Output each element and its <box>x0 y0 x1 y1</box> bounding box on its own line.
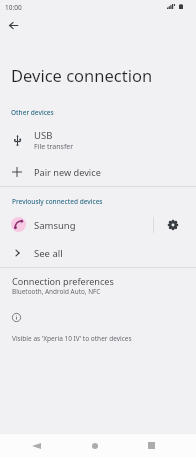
button[interactable]: Pair new device <box>0 162 196 182</box>
staticText: Bluetooth, Android Auto, NFC <box>12 287 101 296</box>
staticText: Device connection <box>11 64 153 86</box>
button[interactable]: Samsung <box>0 214 153 236</box>
staticText: Samsung <box>34 219 76 232</box>
button[interactable]: Connection preferences <box>0 272 196 300</box>
staticText: 10:00 <box>5 3 22 12</box>
staticText: USB <box>34 129 53 142</box>
button[interactable]: Device settings <box>154 214 192 236</box>
staticText: Previously connected devices <box>12 197 103 206</box>
button[interactable]: See all <box>0 243 196 263</box>
staticText: Visible as 'Xperia 10 IV' to other devic… <box>12 334 132 343</box>
staticText: Connection preferences <box>12 275 114 287</box>
staticText: Pair new device <box>34 166 101 179</box>
button[interactable]: Back <box>1 13 25 37</box>
staticText: Other devices <box>11 108 54 117</box>
button[interactable]: Back <box>25 434 49 457</box>
button[interactable]: Home <box>83 434 107 457</box>
button[interactable]: USB <box>0 128 196 152</box>
staticText: File transfer <box>34 142 74 152</box>
staticText: See all <box>34 247 63 260</box>
button[interactable]: Recent apps <box>139 434 163 457</box>
